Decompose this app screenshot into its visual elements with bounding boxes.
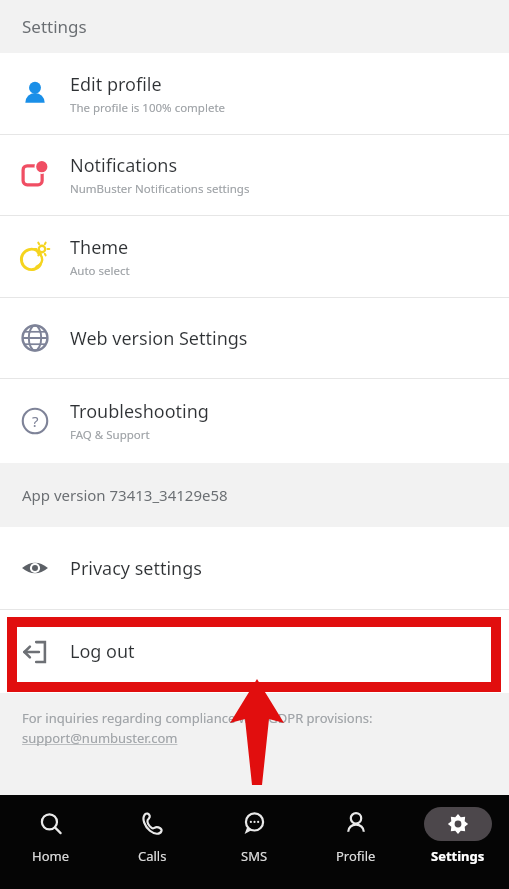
other: Home [38,811,64,837]
staticText: Notifications [70,153,178,178]
button[interactable]: Home [0,795,101,889]
staticText: Troubleshooting [70,399,209,424]
button[interactable]: Web version Settings [0,298,509,378]
button[interactable]: ? [0,379,509,463]
staticText: Profile [336,847,376,865]
other: Calls [139,811,165,837]
button[interactable]: Theme [0,216,509,297]
other: Profile [343,811,369,837]
staticText: Settings [22,15,87,38]
other: SMS [241,811,267,837]
staticText: NumBuster Notifications settings [70,181,250,197]
staticText: App version 73413_34129e58 [22,485,228,505]
button[interactable]: Settings [407,795,509,889]
button[interactable]: Log out [0,610,509,693]
staticText: For inquiries regarding compliance with … [22,709,482,747]
staticText: Web version Settings [70,326,248,351]
staticText: Calls [138,847,167,865]
button[interactable]: Privacy settings [0,527,509,609]
staticText: Auto select [70,263,130,279]
staticText: Home [32,847,69,865]
staticText: SMS [241,847,268,865]
button[interactable]: Notifications [0,135,509,215]
staticText: Theme [70,235,129,260]
staticText: Privacy settings [70,556,202,581]
other: Settings [447,813,469,835]
button[interactable]: Profile [305,795,407,889]
staticText: ? [32,411,39,431]
staticText: FAQ & Support [70,427,150,443]
staticText: Edit profile [70,72,162,97]
button[interactable]: SMS [203,795,305,889]
button[interactable]: Edit profile [0,53,509,134]
staticText: Log out [70,639,135,664]
button[interactable]: Calls [101,795,203,889]
staticText: Settings [431,847,485,865]
staticText: The profile is 100% complete [70,100,226,116]
